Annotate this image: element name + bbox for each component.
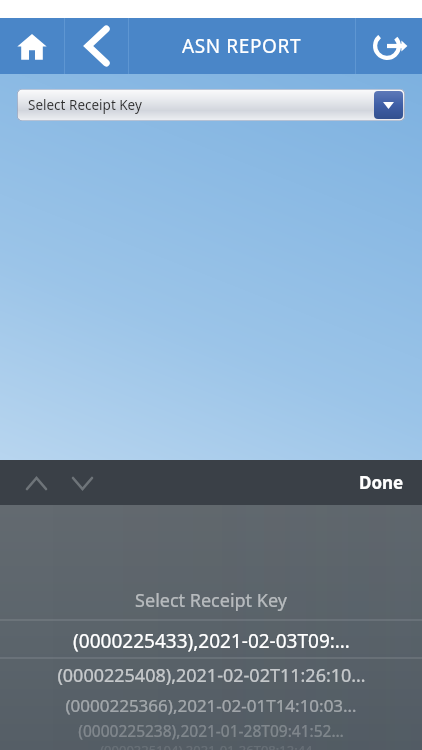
staticText: Select Receipt Key (135, 588, 287, 613)
staticText: ASN REPORT (182, 33, 302, 59)
button[interactable]: (0000225433),2021-02-03T09:… (0, 622, 422, 660)
button[interactable]: Home (0, 18, 64, 74)
button[interactable]: (0000225104),2021-01-26T08:12:44… (0, 741, 422, 750)
staticText: (0000225238),2021-01-28T09:41:52… (78, 720, 344, 741)
button[interactable]: Done (341, 460, 422, 505)
button[interactable]: (0000225408),2021-02-02T11:26:10… (0, 660, 422, 691)
button[interactable]: Next (62, 463, 102, 503)
button[interactable]: Logout (356, 18, 422, 74)
staticText: Select Receipt Key (28, 96, 142, 114)
button[interactable]: (0000225366),2021-02-01T14:10:03… (0, 691, 422, 719)
button[interactable]: Previous (16, 463, 56, 503)
staticText: (0000225433),2021-02-03T09:… (73, 628, 350, 654)
button[interactable]: Back (65, 18, 128, 74)
staticText: Done (359, 471, 404, 494)
button[interactable]: (0000225238),2021-01-28T09:41:52… (0, 719, 422, 741)
button[interactable]: Select Receipt Key (17, 89, 405, 121)
staticText: (0000225366),2021-02-01T14:10:03… (65, 694, 357, 717)
staticText: (0000225408),2021-02-02T11:26:10… (57, 663, 366, 688)
staticText: (0000225104),2021-01-26T08:12:44… (100, 741, 323, 750)
